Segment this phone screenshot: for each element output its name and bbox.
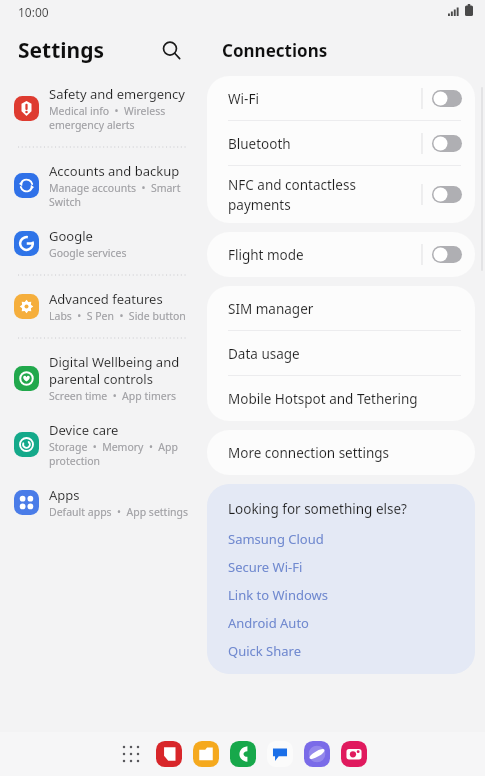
staticText: NFC and contactless payments <box>228 176 412 214</box>
button[interactable]: Flight mode <box>207 232 475 277</box>
staticText: Storage • Memory • App protection <box>49 440 192 468</box>
staticText: Looking for something else? <box>228 500 407 518</box>
staticText: Quick Share <box>228 642 302 660</box>
staticText: Bluetooth <box>228 135 412 153</box>
button[interactable]: Data usage <box>207 331 475 376</box>
button[interactable]: Search <box>154 33 188 67</box>
button[interactable]: NFC and contactless payments <box>207 166 475 223</box>
button[interactable]: Google <box>0 218 200 269</box>
button[interactable]: Bluetooth switch <box>432 135 462 152</box>
staticText: Screen time • App timers <box>49 389 177 403</box>
button[interactable]: Link to Windows <box>228 586 328 604</box>
staticText: Device care <box>49 421 119 439</box>
staticText: Secure Wi-Fi <box>228 558 303 576</box>
button[interactable]: SIM manager <box>207 286 475 331</box>
button[interactable]: My Files <box>191 739 221 769</box>
button[interactable]: More connection settings <box>207 430 475 475</box>
staticText: Labs • S Pen • Side button <box>49 309 186 323</box>
button[interactable]: Samsung Notes <box>154 739 184 769</box>
button[interactable]: All apps <box>116 739 146 769</box>
button[interactable]: Wi-Fi switch <box>432 90 462 107</box>
staticText: Google <box>49 227 93 245</box>
staticText: Digital Wellbeing and parental controls <box>49 353 192 388</box>
staticText: SIM manager <box>228 300 314 318</box>
staticText: Safety and emergency <box>49 85 185 103</box>
staticText: Flight mode <box>228 246 412 264</box>
staticText: Manage accounts • Smart Switch <box>49 181 192 209</box>
button[interactable]: Wi-Fi <box>207 76 475 121</box>
button[interactable]: Accounts and backup <box>0 153 200 218</box>
button[interactable]: Safety and emergency <box>0 76 200 141</box>
staticText: More connection settings <box>228 444 390 462</box>
button[interactable]: Device care <box>0 412 200 477</box>
staticText: Advanced features <box>49 290 163 308</box>
button[interactable]: Camera <box>339 739 369 769</box>
button[interactable]: Mobile Hotspot and Tethering <box>207 376 475 421</box>
staticText: Settings <box>18 36 105 65</box>
staticText: Accounts and backup <box>49 162 180 180</box>
button[interactable]: Messages <box>265 739 295 769</box>
staticText: Samsung Cloud <box>228 530 324 548</box>
staticText: 10:00 <box>18 4 49 20</box>
button[interactable]: Advanced features <box>0 281 200 332</box>
button[interactable]: Secure Wi-Fi <box>228 558 303 576</box>
button[interactable]: Apps <box>0 477 200 528</box>
staticText: Android Auto <box>228 614 309 632</box>
staticText: Google services <box>49 246 127 260</box>
button[interactable]: Bluetooth <box>207 121 475 166</box>
button[interactable]: NFC and contactless payments switch <box>432 186 462 203</box>
staticText: Link to Windows <box>228 586 328 604</box>
button[interactable]: Digital Wellbeing and parental controls <box>0 344 200 412</box>
staticText: Default apps • App settings <box>49 505 189 519</box>
staticText: Mobile Hotspot and Tethering <box>228 390 418 408</box>
button[interactable]: Android Auto <box>228 614 309 632</box>
staticText: Data usage <box>228 345 300 363</box>
button[interactable]: Quick Share <box>228 642 302 660</box>
button[interactable]: Flight mode switch <box>432 246 462 263</box>
staticText: Medical info • Wireless emergency alerts <box>49 104 192 132</box>
staticText: Wi-Fi <box>228 90 412 108</box>
button[interactable]: Phone <box>228 739 258 769</box>
button[interactable]: Samsung Cloud <box>228 530 324 548</box>
button[interactable]: Samsung Internet <box>302 739 332 769</box>
staticText: Connections <box>222 39 328 62</box>
staticText: Apps <box>49 486 80 504</box>
